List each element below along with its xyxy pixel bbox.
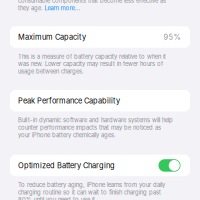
button[interactable]: Peak Performance Capability bbox=[10, 90, 190, 111]
staticText: usage between charges. bbox=[18, 68, 84, 75]
staticText: Optimized Battery Charging bbox=[18, 161, 115, 170]
staticText: This is a measure of battery capacity re… bbox=[18, 53, 166, 60]
staticText: charging routine so it can wait to finis… bbox=[18, 189, 161, 196]
staticText: they age. bbox=[18, 5, 43, 12]
button[interactable]: Learn more... bbox=[44, 5, 80, 12]
button[interactable]: Maximum Capacity bbox=[10, 26, 190, 48]
staticText: consumable components that become less e… bbox=[18, 0, 166, 4]
button[interactable]: Optimized Battery Charging bbox=[10, 155, 190, 176]
staticText: counter performance impacts that may be … bbox=[18, 124, 161, 131]
staticText: your iPhone battery chemically ages. bbox=[18, 131, 116, 139]
staticText: To reduce battery aging, iPhone learns f… bbox=[18, 181, 165, 188]
staticText: Maximum Capacity bbox=[18, 32, 86, 41]
staticText: 95% bbox=[163, 32, 180, 41]
staticText: Peak Performance Capability bbox=[18, 96, 120, 105]
staticText: Learn more... bbox=[44, 5, 80, 12]
staticText: 80% until you need to use it. bbox=[18, 196, 97, 200]
staticText: was new. Lower capacity may result in fe… bbox=[18, 60, 163, 67]
staticText: Built-in dynamic software and hardware s… bbox=[18, 117, 173, 124]
